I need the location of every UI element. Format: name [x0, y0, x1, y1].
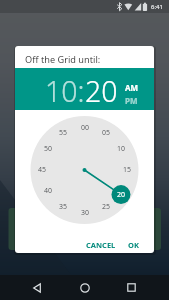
staticText: 00	[81, 123, 90, 133]
staticText: 55	[59, 128, 68, 138]
button[interactable]: 15	[118, 164, 136, 176]
staticText: 15	[123, 165, 132, 175]
button[interactable]: 45	[33, 164, 51, 176]
button[interactable]: 10	[112, 143, 130, 155]
button[interactable]: 00	[76, 122, 94, 134]
button[interactable]: 05	[97, 127, 115, 139]
button[interactable]: AM	[125, 82, 139, 93]
staticText: OK	[128, 240, 139, 250]
staticText: Off the Grid until:	[25, 53, 101, 66]
button[interactable]: CANCEL	[80, 236, 122, 253]
staticText: 40	[44, 186, 53, 196]
staticText: 10	[117, 144, 126, 154]
staticText: 45	[38, 165, 47, 175]
button[interactable]: 10:	[45, 72, 85, 111]
button[interactable]	[118, 275, 144, 300]
staticText: 05	[102, 128, 111, 138]
button[interactable]: 55	[54, 127, 72, 139]
staticText: CANCEL	[86, 240, 116, 250]
button[interactable]: 35	[54, 201, 72, 213]
staticText: 6:41	[151, 3, 163, 11]
button[interactable]: 40	[39, 185, 57, 197]
staticText: 35	[59, 202, 68, 212]
button[interactable]: 20	[112, 189, 130, 201]
button[interactable]: 50	[39, 143, 57, 155]
button[interactable]: 30	[76, 207, 94, 219]
button[interactable]: PM	[125, 95, 138, 106]
staticText: 20	[117, 190, 126, 200]
button[interactable]: OK	[122, 236, 145, 253]
staticText: 25	[102, 202, 111, 212]
button[interactable]: 20	[85, 72, 118, 111]
button[interactable]: 25	[97, 201, 115, 213]
button[interactable]	[24, 275, 50, 300]
button[interactable]	[72, 275, 98, 300]
staticText: 30	[81, 208, 90, 218]
staticText: 50	[44, 144, 53, 154]
